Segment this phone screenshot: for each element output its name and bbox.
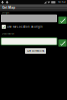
button[interactable]: Use My Location as Origin	[0, 24, 67, 29]
staticText: Get Map	[2, 6, 15, 9]
staticText: 10:52	[58, 0, 66, 4]
staticText: Use My Location as Origin	[7, 25, 43, 28]
staticText: Origin	[2, 11, 9, 14]
button[interactable]: Get Directions	[25, 48, 46, 54]
staticText: Destination	[2, 32, 14, 35]
staticText: Get Directions	[27, 49, 44, 53]
